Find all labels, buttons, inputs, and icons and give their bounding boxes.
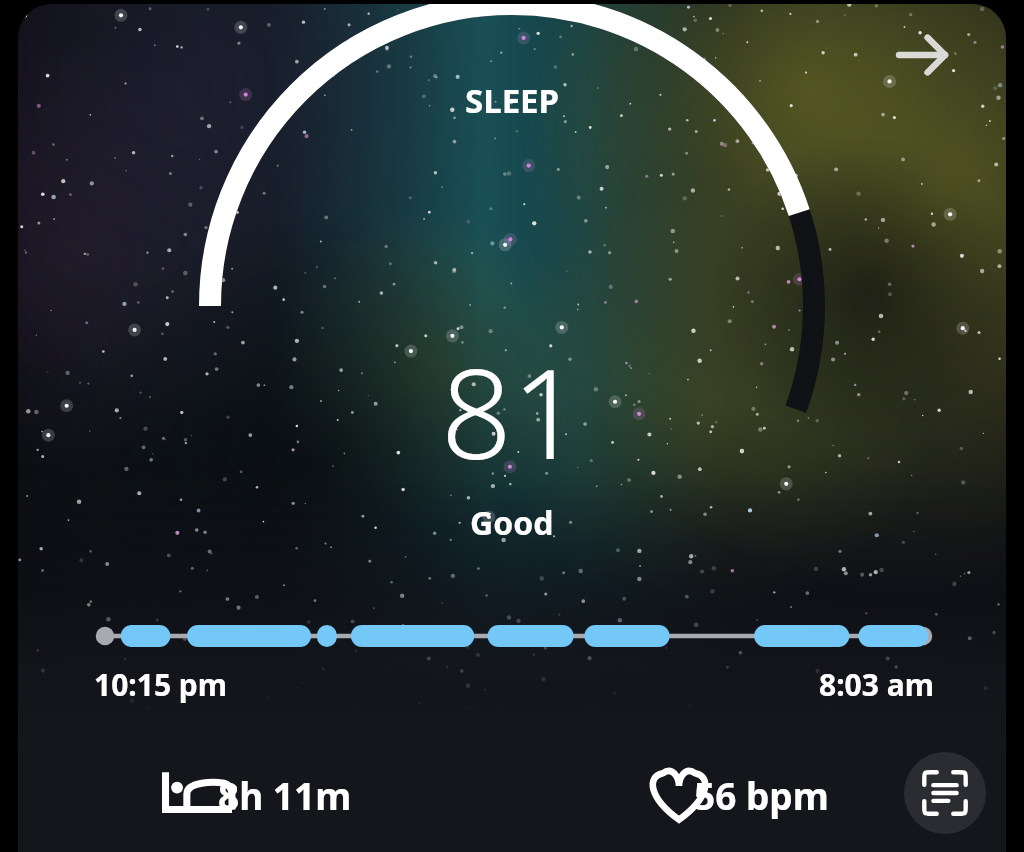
- staticText: 8h 11m: [218, 770, 352, 820]
- staticText: SLEEP: [465, 78, 560, 123]
- staticText: Good: [470, 501, 554, 545]
- button[interactable]: Sleep details: [904, 752, 986, 834]
- staticText: 8:03 am: [819, 664, 934, 705]
- staticText: 56 bpm: [694, 770, 829, 820]
- staticText: 10:15 pm: [94, 664, 228, 705]
- staticText: 81: [441, 326, 583, 495]
- button[interactable]: 56 bpm: [694, 770, 829, 820]
- button[interactable]: 8h 11m: [218, 770, 352, 820]
- button[interactable]: SLEEP: [18, 4, 1006, 852]
